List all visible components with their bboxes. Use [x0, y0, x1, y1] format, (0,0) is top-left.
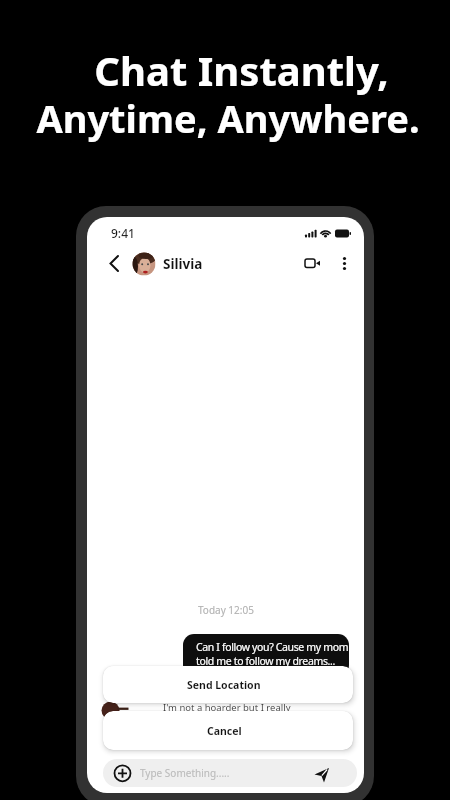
staticText: Cancel	[207, 724, 242, 738]
button[interactable]: Cancel	[103, 711, 353, 750]
staticText: Chat Instantly,	[94, 43, 389, 97]
staticText: Type Something.....	[140, 766, 230, 780]
staticText: 9:41	[111, 225, 135, 241]
button[interactable]	[300, 254, 325, 273]
button[interactable]: Send Location	[103, 666, 353, 703]
staticText: Today 12:05	[198, 603, 254, 617]
staticText: Anytime, Anywhere.	[36, 92, 420, 144]
staticText: Silivia	[163, 255, 203, 273]
button[interactable]	[336, 251, 353, 276]
staticText: Send Location	[187, 678, 261, 692]
staticText: Can I follow you? Cause my mom told me t…	[196, 640, 349, 668]
button[interactable]: Type Something.....	[103, 759, 357, 787]
staticText: I'm not a hoarder but I really	[163, 701, 291, 714]
button[interactable]	[105, 251, 123, 276]
